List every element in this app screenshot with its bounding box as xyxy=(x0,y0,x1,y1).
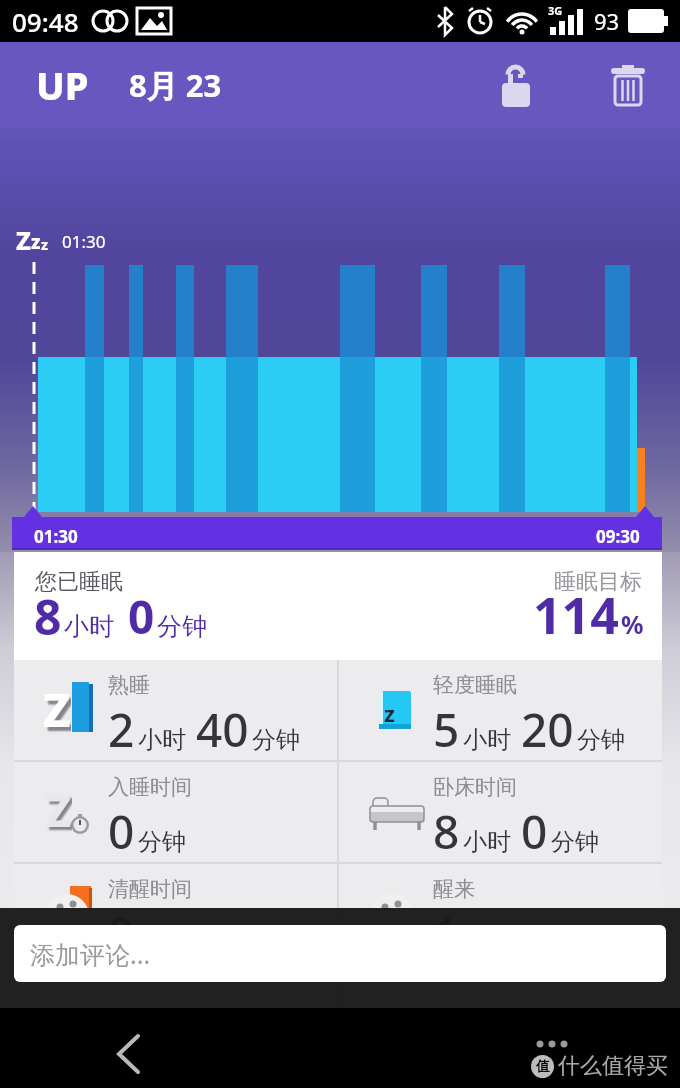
staticText: 卧床时间 xyxy=(433,774,517,800)
button[interactable]: z xyxy=(339,660,662,760)
staticText: 0 xyxy=(128,585,155,648)
button[interactable]: 添加评论... xyxy=(14,925,666,982)
staticText: 分钟 xyxy=(138,827,186,857)
staticText: 轻度睡眠 xyxy=(433,672,517,698)
staticText: 40 xyxy=(196,698,249,760)
staticText: 01:30 xyxy=(62,230,106,253)
staticText: Z xyxy=(16,223,31,257)
staticText: Z xyxy=(45,780,72,836)
staticText: 小时 xyxy=(463,827,511,857)
staticText: 8 xyxy=(433,800,460,862)
button[interactable]: UP xyxy=(36,59,89,111)
staticText: 0 xyxy=(108,800,135,862)
staticText: 01:30 xyxy=(34,525,78,548)
staticText: 熟睡 xyxy=(108,672,150,698)
staticText: z xyxy=(384,698,395,728)
staticText: 小时 xyxy=(64,611,114,642)
staticText: 醒来 xyxy=(433,876,475,902)
staticText: 8月 23 xyxy=(129,64,222,106)
staticText: 分钟 xyxy=(157,611,207,642)
staticText: % xyxy=(621,607,644,641)
staticText: 睡眠目标 xyxy=(554,568,642,596)
button[interactable] xyxy=(100,1026,156,1082)
staticText: 09:48 xyxy=(12,4,79,39)
button[interactable]: 卧床时间 xyxy=(339,762,662,862)
button[interactable]: Z xyxy=(14,762,337,862)
button[interactable]: 清醒时间 xyxy=(14,864,337,1088)
staticText: 您已睡眠 xyxy=(35,568,123,596)
staticText: 3G xyxy=(548,3,563,18)
staticText: 分钟 xyxy=(252,725,300,755)
staticText: Z xyxy=(43,678,71,734)
staticText: 09:30 xyxy=(596,525,640,548)
staticText: 什么值得买 xyxy=(558,1052,668,1080)
staticText: 0 xyxy=(521,800,548,862)
staticText: 小时 xyxy=(138,725,186,755)
staticText: 114 xyxy=(533,581,619,649)
staticText: 值 xyxy=(536,1058,550,1076)
button[interactable] xyxy=(522,1024,582,1064)
button[interactable]: Z xyxy=(14,660,337,760)
staticText: 清醒时间 xyxy=(108,876,192,902)
button[interactable] xyxy=(492,55,540,115)
staticText: 93 xyxy=(594,6,620,36)
button[interactable]: 醒来 xyxy=(339,864,662,1088)
staticText: 入睡时间 xyxy=(108,774,192,800)
staticText: 20 xyxy=(521,698,574,760)
staticText: 8 xyxy=(34,584,62,649)
staticText: 分钟 xyxy=(577,725,625,755)
staticText: 5 xyxy=(433,698,460,760)
button[interactable] xyxy=(604,55,652,115)
staticText: 添加评论... xyxy=(30,937,151,971)
staticText: z xyxy=(31,229,41,255)
staticText: z xyxy=(41,235,48,254)
staticText: 分钟 xyxy=(551,827,599,857)
staticText: 小时 xyxy=(463,725,511,755)
staticText: 2 xyxy=(108,698,135,760)
staticText: 0 xyxy=(108,902,135,965)
staticText: 1 xyxy=(433,902,460,965)
